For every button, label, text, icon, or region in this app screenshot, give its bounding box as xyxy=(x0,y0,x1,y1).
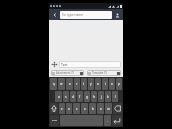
button[interactable]: u xyxy=(95,78,101,90)
button[interactable]: e xyxy=(66,78,73,90)
button[interactable]: Template (1) xyxy=(87,70,121,76)
staticText: f xyxy=(79,95,81,99)
button[interactable]: c xyxy=(73,103,80,114)
staticText: w xyxy=(60,82,63,86)
staticText: e xyxy=(69,82,71,86)
staticText: Text xyxy=(61,62,68,67)
staticText: r xyxy=(76,82,78,86)
button[interactable]: a xyxy=(55,91,62,102)
staticText: x xyxy=(68,107,70,111)
staticText: . xyxy=(107,119,108,123)
staticText: d xyxy=(72,95,74,99)
button[interactable]: Shift xyxy=(50,103,58,114)
button[interactable]: . xyxy=(104,115,111,126)
staticText: n xyxy=(100,107,102,111)
button[interactable]: b xyxy=(89,103,96,114)
button[interactable]: r xyxy=(74,78,80,90)
button[interactable]: d xyxy=(70,91,76,102)
button[interactable]: s xyxy=(63,91,69,102)
staticText: g xyxy=(86,95,88,99)
button[interactable]: Enter xyxy=(112,115,122,126)
button[interactable]: l xyxy=(112,91,118,102)
staticText: Template (1) xyxy=(92,71,116,75)
button[interactable]: Back xyxy=(51,11,59,19)
button[interactable]: ?123 xyxy=(50,115,59,126)
staticText: p xyxy=(118,82,120,86)
button[interactable]: f xyxy=(77,91,83,102)
button[interactable]: q xyxy=(50,78,57,90)
staticText: To: type name xyxy=(62,13,84,17)
staticText: i xyxy=(105,82,106,86)
button[interactable]: m xyxy=(105,103,112,114)
button[interactable]: x xyxy=(66,103,72,114)
button[interactable]: z xyxy=(59,103,65,114)
staticText: t xyxy=(83,82,85,86)
staticText: z xyxy=(61,107,63,111)
button[interactable]: h xyxy=(91,91,97,102)
button[interactable]: w xyxy=(58,78,65,90)
button[interactable]: y xyxy=(88,78,94,90)
button[interactable]: t xyxy=(81,78,87,90)
staticText: s xyxy=(65,95,67,99)
staticText: m xyxy=(107,107,110,111)
button[interactable]: g xyxy=(84,91,90,102)
button[interactable]: n xyxy=(97,103,104,114)
staticText: b xyxy=(92,107,94,111)
button[interactable]: Attachment (1) xyxy=(51,70,84,76)
staticText: v xyxy=(84,107,86,111)
staticText: a xyxy=(58,95,60,99)
staticText: h xyxy=(93,95,95,99)
button[interactable]: Add attachment xyxy=(51,61,58,68)
staticText: u xyxy=(97,82,99,86)
staticText: c xyxy=(76,107,78,111)
staticText: o xyxy=(111,82,113,86)
staticText: l xyxy=(115,95,116,99)
staticText: Attachment (1) xyxy=(56,71,79,75)
staticText: q xyxy=(53,82,55,86)
button[interactable]: j xyxy=(98,91,104,102)
button[interactable]: v xyxy=(81,103,88,114)
staticText: y xyxy=(90,82,92,86)
button[interactable]: Text xyxy=(59,61,121,68)
button[interactable]: Backspace xyxy=(113,103,122,114)
button[interactable]: To: type name xyxy=(60,11,112,19)
button[interactable]: p xyxy=(116,78,122,90)
staticText: ?123 xyxy=(52,119,57,122)
staticText: k xyxy=(107,95,109,99)
button[interactable]: Add contact xyxy=(113,11,121,19)
button[interactable]: o xyxy=(109,78,115,90)
staticText: j xyxy=(101,95,102,99)
button[interactable]: i xyxy=(102,78,108,90)
button[interactable]: k xyxy=(105,91,111,102)
